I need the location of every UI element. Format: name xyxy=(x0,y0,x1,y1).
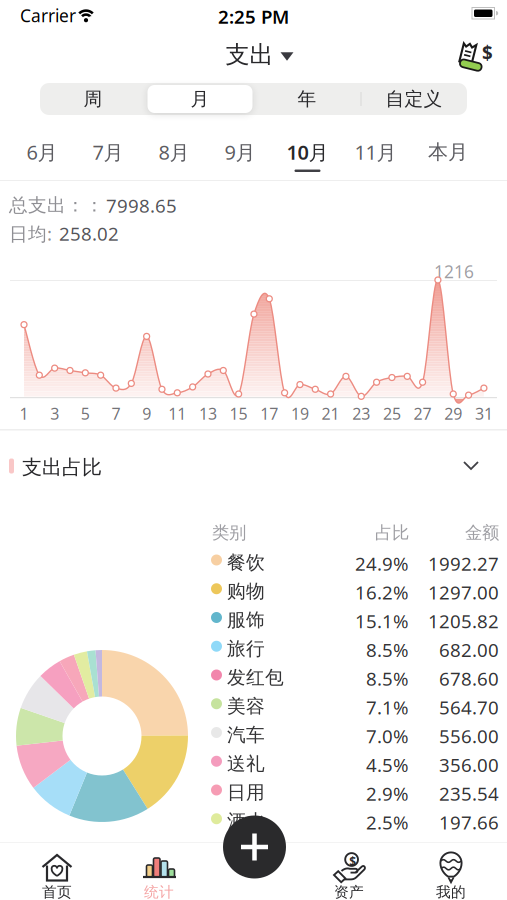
button[interactable]: 首页 xyxy=(28,845,86,895)
staticText: 13 xyxy=(199,403,217,424)
button[interactable]: 本月 xyxy=(416,137,480,167)
button[interactable]: 餐饮 xyxy=(0,0,507,900)
staticText: 17 xyxy=(260,403,278,424)
button[interactable]: 购物 xyxy=(0,0,507,900)
staticText: 235.54 xyxy=(439,781,499,806)
staticText: 24.9% xyxy=(355,551,409,576)
staticText: 11月 xyxy=(354,139,396,165)
staticText: 日均: xyxy=(9,221,57,246)
staticText: 682.00 xyxy=(439,637,499,662)
staticText: 556.00 xyxy=(439,723,499,748)
staticText: 197.66 xyxy=(439,810,499,835)
staticText: 日用 xyxy=(227,781,265,804)
button[interactable]: 月 xyxy=(147,83,253,115)
button[interactable]: 自定义 xyxy=(361,83,467,115)
staticText: 送礼 xyxy=(227,752,265,775)
button[interactable]: 收起 xyxy=(463,461,479,471)
staticText: 美容 xyxy=(227,695,265,718)
button[interactable]: 8月 xyxy=(142,137,206,167)
staticText: 564.70 xyxy=(439,695,499,720)
staticText: 16.2% xyxy=(355,580,409,605)
staticText: 1992.27 xyxy=(428,551,499,576)
staticText: 8月 xyxy=(158,139,189,165)
staticText: 服饰 xyxy=(227,608,265,631)
button[interactable]: 6月 xyxy=(10,137,74,167)
staticText: $ xyxy=(482,40,493,65)
staticText: 金额 xyxy=(465,522,499,543)
button[interactable]: 记一笔 xyxy=(223,815,286,878)
staticText: 首页 xyxy=(42,883,72,900)
button[interactable]: 日用 xyxy=(0,0,507,900)
staticText: 23 xyxy=(352,403,370,424)
button[interactable]: 9月 xyxy=(208,137,272,167)
button[interactable]: 汽车 xyxy=(0,0,507,900)
staticText: 9 xyxy=(142,403,151,424)
staticText: 7.1% xyxy=(366,695,409,720)
staticText: 2:25 PM xyxy=(218,4,289,29)
button[interactable]: 支出 xyxy=(225,40,293,69)
staticText: 258.02 xyxy=(59,221,119,246)
button[interactable]: 统计 xyxy=(130,845,188,895)
staticText: 支出 xyxy=(225,40,273,69)
staticText: 10月 xyxy=(286,139,328,165)
staticText: 25 xyxy=(383,403,401,424)
staticText: 1 xyxy=(19,403,28,424)
staticText: 7.0% xyxy=(366,723,409,748)
button[interactable]: 旅行 xyxy=(0,0,507,900)
staticText: 27 xyxy=(414,403,432,424)
staticText: 6月 xyxy=(26,139,57,165)
staticText: 支出占比 xyxy=(22,455,102,480)
staticText: 7 xyxy=(111,403,120,424)
button[interactable]: 美容 xyxy=(0,0,507,900)
button[interactable]: 送礼 xyxy=(0,0,507,900)
staticText: 15 xyxy=(230,403,248,424)
staticText: 统计 xyxy=(144,883,174,900)
staticText: 2.5% xyxy=(366,810,409,835)
staticText: 总支出：： xyxy=(9,194,104,217)
button[interactable]: 酒水 xyxy=(0,0,507,900)
staticText: 1297.00 xyxy=(428,580,499,605)
staticText: 资产 xyxy=(334,883,364,900)
button[interactable]: 7月 xyxy=(76,137,140,167)
staticText: 占比 xyxy=(375,522,409,543)
staticText: $ xyxy=(349,853,356,869)
staticText: 7998.65 xyxy=(106,193,177,218)
staticText: 本月 xyxy=(428,140,468,164)
staticText: 酒水 xyxy=(227,810,265,833)
staticText: 7月 xyxy=(92,139,123,165)
staticText: 3 xyxy=(50,403,59,424)
staticText: 汽车 xyxy=(227,723,265,746)
staticText: 9月 xyxy=(224,139,255,165)
staticText: 自定义 xyxy=(385,87,442,110)
staticText: 31 xyxy=(475,403,493,424)
staticText: 月 xyxy=(190,87,209,110)
staticText: 678.60 xyxy=(439,666,499,691)
staticText: 15.1% xyxy=(355,608,409,633)
staticText: 356.00 xyxy=(439,752,499,777)
staticText: 19 xyxy=(291,403,309,424)
button[interactable]: 发红包 xyxy=(0,0,507,900)
staticText: 21 xyxy=(322,403,340,424)
button[interactable]: 年 xyxy=(254,83,360,115)
button[interactable]: 周 xyxy=(40,83,146,115)
staticText: 餐饮 xyxy=(227,551,265,574)
button[interactable]: 我的 xyxy=(422,845,480,895)
button[interactable]: 10月 xyxy=(275,137,339,167)
staticText: 8.5% xyxy=(366,637,409,662)
staticText: 5 xyxy=(81,403,90,424)
staticText: 2.9% xyxy=(366,781,409,806)
button[interactable]: $ xyxy=(320,845,378,895)
staticText: 29 xyxy=(444,403,462,424)
staticText: 1216 xyxy=(434,260,474,283)
staticText: 周 xyxy=(83,87,102,110)
button[interactable]: 记账 xyxy=(452,36,488,70)
staticText: 旅行 xyxy=(227,637,265,660)
staticText: 1205.82 xyxy=(428,608,499,633)
staticText: 发红包 xyxy=(227,666,284,689)
staticText: 8.5% xyxy=(366,666,409,691)
staticText: 我的 xyxy=(436,883,466,900)
button[interactable]: 服饰 xyxy=(0,0,507,900)
button[interactable]: 11月 xyxy=(343,137,407,167)
staticText: Carrier xyxy=(20,4,76,27)
staticText: 年 xyxy=(297,87,316,110)
